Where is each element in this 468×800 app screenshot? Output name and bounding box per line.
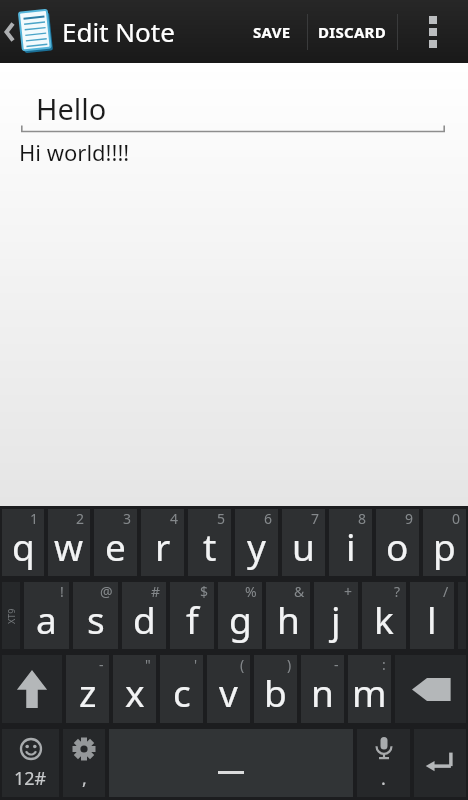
staticText: 2 bbox=[76, 509, 85, 528]
staticText: g bbox=[229, 594, 252, 644]
button[interactable] bbox=[2, 655, 62, 723]
button[interactable]: l bbox=[410, 582, 454, 649]
button[interactable]: , bbox=[63, 729, 105, 797]
button[interactable]: i bbox=[329, 509, 372, 576]
staticText: . bbox=[381, 766, 386, 791]
staticText: / bbox=[443, 582, 449, 601]
staticText: o bbox=[386, 521, 409, 571]
staticText: 8 bbox=[358, 509, 367, 528]
staticText: 0 bbox=[452, 509, 461, 528]
staticText: l bbox=[427, 594, 437, 644]
button[interactable]: e bbox=[94, 509, 137, 576]
staticText: Hi world!!!! bbox=[19, 137, 130, 167]
button[interactable]: j bbox=[314, 582, 358, 649]
staticText: 6 bbox=[264, 509, 273, 528]
button[interactable] bbox=[109, 729, 353, 797]
staticText: # bbox=[151, 582, 161, 601]
button[interactable]: DISCARD bbox=[308, 0, 397, 63]
button[interactable]: t bbox=[188, 509, 231, 576]
staticText: " bbox=[145, 655, 151, 674]
button[interactable]: . bbox=[357, 729, 410, 797]
button[interactable]: d bbox=[122, 582, 166, 649]
staticText: p bbox=[433, 521, 456, 571]
staticText: & bbox=[294, 582, 305, 601]
button[interactable] bbox=[395, 655, 466, 723]
button[interactable]: x bbox=[113, 655, 156, 723]
staticText: @ bbox=[100, 582, 113, 601]
staticText: m bbox=[352, 667, 387, 717]
staticText: w bbox=[54, 521, 84, 571]
button[interactable]: z bbox=[66, 655, 109, 723]
staticText: SAVE bbox=[253, 22, 291, 42]
staticText: c bbox=[173, 667, 191, 717]
staticText: k bbox=[374, 594, 394, 644]
staticText: u bbox=[292, 521, 315, 571]
staticText: h bbox=[277, 594, 300, 644]
button[interactable]: q bbox=[2, 509, 44, 576]
staticText: , bbox=[82, 766, 87, 791]
button[interactable] bbox=[398, 0, 468, 63]
staticText: e bbox=[105, 521, 126, 571]
staticText: a bbox=[36, 594, 57, 644]
staticText: 4 bbox=[170, 509, 179, 528]
staticText: 7 bbox=[311, 509, 320, 528]
staticText: q bbox=[12, 521, 35, 571]
staticText: s bbox=[87, 594, 105, 644]
button[interactable]: k bbox=[362, 582, 406, 649]
staticText: ' bbox=[194, 655, 198, 674]
staticText: XT9 bbox=[5, 608, 17, 624]
staticText: 5 bbox=[217, 509, 226, 528]
staticText: Hello bbox=[36, 89, 107, 128]
staticText: n bbox=[311, 667, 334, 717]
button[interactable]: r bbox=[141, 509, 184, 576]
staticText: Edit Note bbox=[62, 14, 175, 49]
staticText: i bbox=[346, 521, 356, 571]
staticText: 3 bbox=[123, 509, 132, 528]
button[interactable]: b bbox=[254, 655, 297, 723]
button[interactable] bbox=[414, 729, 466, 797]
button[interactable]: 12# bbox=[2, 729, 59, 797]
button[interactable]: g bbox=[218, 582, 262, 649]
button[interactable]: Hello bbox=[0, 63, 468, 506]
button[interactable]: n bbox=[301, 655, 344, 723]
staticText: 9 bbox=[405, 509, 414, 528]
staticText: t bbox=[203, 521, 217, 571]
staticText: % bbox=[245, 582, 257, 601]
staticText: : bbox=[382, 655, 386, 674]
staticText: DISCARD bbox=[318, 22, 387, 42]
staticText: 1 bbox=[30, 509, 39, 528]
button[interactable]: SAVE bbox=[236, 0, 307, 63]
staticText: v bbox=[219, 667, 238, 717]
staticText: ? bbox=[394, 582, 401, 601]
staticText: r bbox=[155, 521, 171, 571]
staticText: f bbox=[186, 594, 199, 644]
button[interactable]: y bbox=[235, 509, 278, 576]
button[interactable]: f bbox=[170, 582, 214, 649]
button[interactable]: m bbox=[348, 655, 391, 723]
button[interactable]: u bbox=[282, 509, 325, 576]
button[interactable]: p bbox=[423, 509, 466, 576]
staticText: - bbox=[334, 655, 339, 674]
button[interactable]: o bbox=[376, 509, 419, 576]
staticText: ( bbox=[240, 655, 245, 674]
staticText: $ bbox=[200, 582, 209, 601]
button[interactable]: c bbox=[160, 655, 203, 723]
button[interactable]: h bbox=[266, 582, 310, 649]
button[interactable]: a bbox=[24, 582, 69, 649]
staticText: - bbox=[99, 655, 104, 674]
staticText: z bbox=[79, 667, 97, 717]
staticText: ! bbox=[60, 582, 64, 601]
staticText: ) bbox=[287, 655, 292, 674]
button[interactable]: w bbox=[48, 509, 90, 576]
staticText: d bbox=[133, 594, 156, 644]
staticText: j bbox=[331, 594, 341, 644]
staticText: b bbox=[264, 667, 287, 717]
button[interactable]: Edit Note bbox=[0, 0, 175, 63]
staticText: y bbox=[247, 521, 266, 571]
staticText: 12# bbox=[14, 766, 47, 791]
button[interactable]: s bbox=[73, 582, 118, 649]
button[interactable]: v bbox=[207, 655, 250, 723]
staticText: x bbox=[125, 667, 145, 717]
staticText: + bbox=[344, 582, 353, 601]
